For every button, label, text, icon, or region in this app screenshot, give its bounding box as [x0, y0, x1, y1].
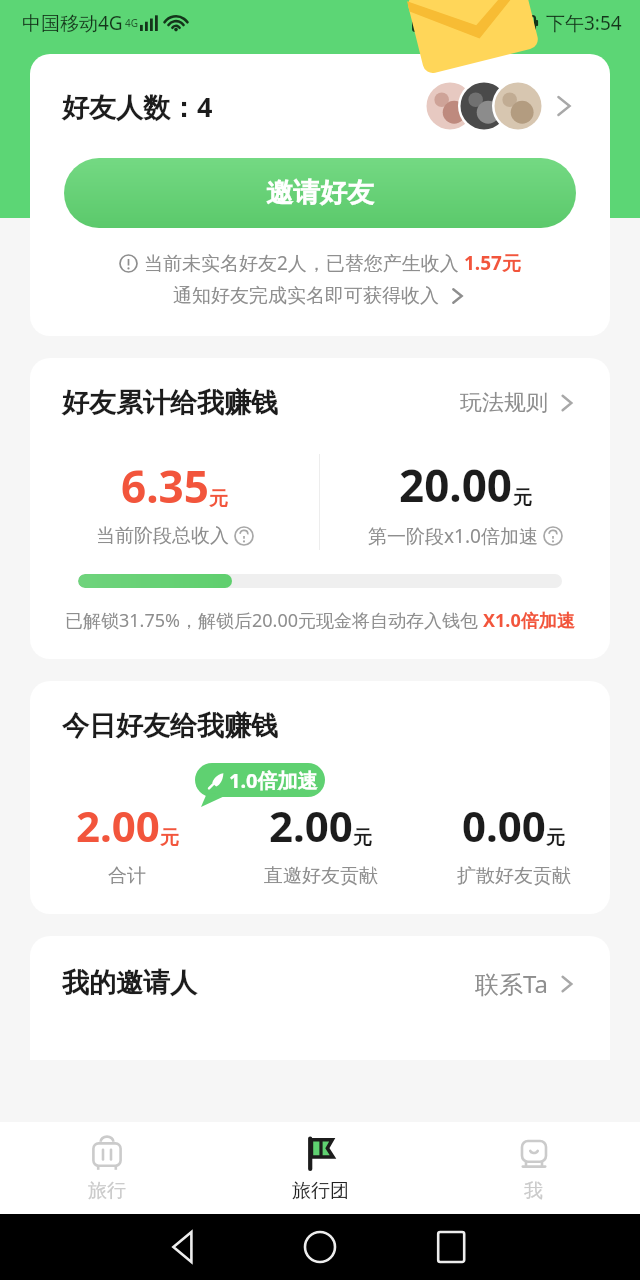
- staticText: 中国移动4G: [22, 10, 123, 36]
- button[interactable]: 我: [427, 1122, 640, 1214]
- staticText: 我的邀请人: [62, 966, 197, 1000]
- staticText: 合计: [108, 864, 146, 888]
- staticText: 20.00: [399, 455, 513, 515]
- staticText: 已解锁31.75%，解锁后20.00元现金将自动存入钱包: [65, 608, 483, 633]
- staticText: 今日好友给我赚钱: [62, 709, 278, 743]
- button[interactable]: 旅行: [0, 1122, 214, 1214]
- staticText: 旅行: [88, 1179, 126, 1203]
- staticText: 元: [160, 826, 179, 850]
- staticText: 元: [353, 826, 372, 850]
- button[interactable]: 旅行团: [214, 1122, 427, 1214]
- staticText: 元: [546, 826, 565, 850]
- staticText: X1.0倍加速: [483, 608, 575, 633]
- staticText: 元: [513, 486, 532, 510]
- staticText: 玩法规则: [460, 389, 548, 417]
- staticText: 当前阶段总收入: [96, 524, 229, 548]
- button[interactable]: 玩法规则: [460, 389, 578, 417]
- staticText: 当前未实名好友2人，已替您产生收入: [144, 250, 464, 276]
- button[interactable]: 联系Ta: [475, 967, 578, 1000]
- staticText: 旅行团: [292, 1179, 349, 1203]
- staticText: 扩散好友贡献: [457, 864, 571, 888]
- staticText: 下午3:54: [546, 10, 622, 36]
- staticText: 好友人数：4: [62, 88, 213, 125]
- staticText: 1.0倍加速: [229, 767, 318, 794]
- staticText: 邀请好友: [266, 176, 374, 210]
- staticText: 2.00: [76, 797, 160, 854]
- staticText: 联系Ta: [475, 967, 548, 1000]
- staticText: 6.35: [121, 456, 209, 516]
- button[interactable]: 通知好友完成实名即可获得收入: [30, 284, 610, 308]
- staticText: 好友累计给我赚钱: [62, 386, 278, 420]
- staticText: 第一阶段x1.0倍加速: [368, 523, 538, 549]
- button[interactable]: 帮助: [543, 526, 563, 546]
- staticText: HD: [416, 16, 433, 31]
- staticText: 通知好友完成实名即可获得收入: [173, 284, 439, 308]
- button[interactable]: 好友人数：4: [30, 80, 610, 132]
- staticText: 1.57元: [464, 250, 521, 276]
- staticText: 元: [209, 487, 228, 511]
- staticText: 4G: [125, 16, 138, 30]
- button[interactable]: 邀请好友: [64, 158, 576, 228]
- staticText: 2.00: [269, 797, 353, 854]
- staticText: 0.00: [462, 797, 546, 854]
- staticText: 直邀好友贡献: [264, 864, 378, 888]
- staticText: 我: [524, 1179, 543, 1203]
- staticText: 66%: [465, 10, 503, 36]
- button[interactable]: 帮助: [234, 526, 254, 546]
